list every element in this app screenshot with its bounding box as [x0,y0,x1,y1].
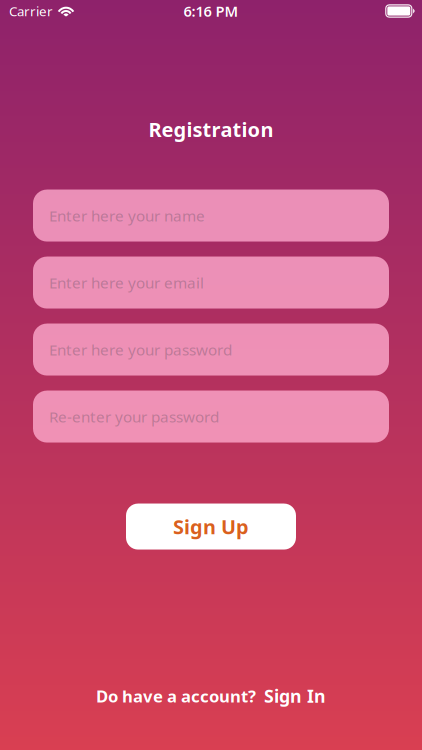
staticText: Re-enter your password [49,406,219,427]
staticText: Do have a account? [96,685,256,707]
staticText: Enter here your name [49,205,205,226]
staticText: Sign In [264,684,326,708]
staticText: Enter here your password [49,339,232,360]
button[interactable]: Re-enter your password [33,391,389,443]
staticText: Carrier [9,2,53,20]
button[interactable]: Enter here your email [33,257,389,309]
button[interactable]: Do have a account? [96,684,326,708]
staticText: Enter here your email [49,272,204,293]
button[interactable]: Sign Up [126,504,296,550]
staticText: Sign Up [173,513,249,540]
staticText: 6:16 PM [183,1,238,21]
button[interactable]: Enter here your name [33,190,389,242]
button[interactable]: Enter here your password [33,324,389,376]
staticText: Registration [148,116,273,143]
